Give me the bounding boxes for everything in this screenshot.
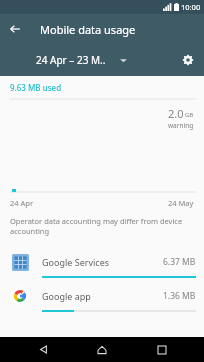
button[interactable]: Back xyxy=(0,14,30,44)
button[interactable]: Back xyxy=(26,337,60,362)
button[interactable]: 24 Apr – 23 M.. xyxy=(0,44,172,76)
staticText: 24 Apr xyxy=(10,198,34,208)
staticText: Google app xyxy=(42,290,163,302)
button[interactable]: Home xyxy=(85,337,119,362)
staticText: 1.36 MB xyxy=(163,290,196,302)
button[interactable]: Settings xyxy=(172,44,204,76)
button[interactable]: Google Services xyxy=(0,248,204,282)
staticText: 24 Apr – 23 M.. xyxy=(36,53,106,67)
staticText: GB xyxy=(185,111,194,119)
button[interactable]: Google app xyxy=(0,282,204,316)
staticText: 9.63 MB used xyxy=(10,82,62,93)
staticText: 2.0 xyxy=(168,106,184,121)
staticText: Google Services xyxy=(42,256,163,268)
staticText: 10:00 xyxy=(181,2,201,12)
staticText: Operator data accounting may differ from… xyxy=(10,216,190,236)
button[interactable]: Recent apps xyxy=(145,337,179,362)
staticText: warning xyxy=(168,121,194,130)
staticText: 6.37 MB xyxy=(163,256,196,268)
staticText: Mobile data usage xyxy=(40,22,136,37)
staticText: 24 May xyxy=(168,198,194,208)
